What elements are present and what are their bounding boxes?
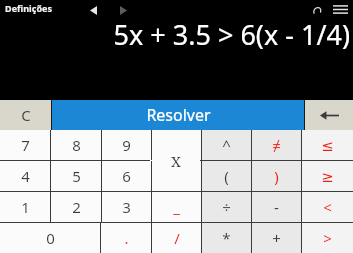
- staticText: _: [173, 197, 180, 217]
- staticText: ≥: [321, 168, 334, 185]
- button[interactable]: ≤: [302, 130, 353, 160]
- button[interactable]: 3: [102, 192, 151, 222]
- staticText: >: [323, 228, 332, 248]
- staticText: 5x + 3.5 > 6(x - 1/4): [95, 16, 350, 53]
- button[interactable]: .: [101, 223, 151, 253]
- staticText: Definições: [5, 2, 52, 14]
- staticText: /: [174, 228, 180, 248]
- staticText: (: [224, 166, 229, 186]
- button[interactable]: ≥: [302, 161, 353, 191]
- staticText: ): [274, 166, 279, 186]
- staticText: *: [222, 228, 231, 248]
- button[interactable]: >: [302, 223, 353, 253]
- staticText: 8: [72, 135, 81, 155]
- button[interactable]: Seguinte: [114, 2, 132, 18]
- button[interactable]: Anular: [308, 1, 326, 17]
- staticText: ^: [222, 135, 231, 155]
- staticText: 5: [72, 166, 81, 186]
- button[interactable]: 2: [51, 192, 101, 222]
- staticText: <: [323, 197, 332, 217]
- staticText: 0: [46, 228, 55, 248]
- button[interactable]: +: [252, 223, 301, 253]
- button[interactable]: 0: [0, 223, 100, 253]
- staticText: C: [21, 105, 31, 125]
- button[interactable]: 8: [51, 130, 101, 160]
- button[interactable]: /: [152, 223, 201, 253]
- button[interactable]: 1: [0, 192, 50, 222]
- button[interactable]: ^: [202, 130, 251, 160]
- staticText: 1: [21, 197, 30, 217]
- button[interactable]: 4: [0, 161, 50, 191]
- button[interactable]: _: [152, 192, 201, 222]
- button[interactable]: -: [252, 192, 301, 222]
- staticText: Resolver: [146, 104, 211, 126]
- button[interactable]: (: [202, 161, 251, 191]
- button[interactable]: 9: [102, 130, 151, 160]
- button[interactable]: ≠: [252, 130, 301, 160]
- button[interactable]: Anterior: [84, 2, 102, 18]
- button[interactable]: ): [252, 161, 301, 191]
- button[interactable]: X: [152, 130, 200, 191]
- button[interactable]: 6: [102, 161, 151, 191]
- button[interactable]: Resolver: [52, 100, 304, 130]
- button[interactable]: Menu: [329, 1, 351, 17]
- button[interactable]: Retrocesso: [305, 100, 353, 130]
- staticText: 6: [122, 166, 131, 186]
- button[interactable]: ÷: [202, 192, 251, 222]
- staticText: -: [274, 197, 279, 217]
- staticText: .: [124, 228, 129, 248]
- button[interactable]: C: [0, 100, 51, 130]
- button[interactable]: *: [202, 223, 251, 253]
- staticText: 3: [122, 197, 131, 217]
- staticText: +: [272, 228, 281, 248]
- staticText: X: [171, 151, 181, 171]
- staticText: ≠: [272, 135, 281, 155]
- staticText: 4: [21, 166, 30, 186]
- staticText: 2: [72, 197, 81, 217]
- staticText: ≤: [321, 137, 334, 154]
- staticText: 7: [21, 135, 30, 155]
- button[interactable]: <: [302, 192, 353, 222]
- button[interactable]: Definições: [3, 1, 54, 15]
- staticText: ÷: [222, 197, 231, 217]
- button[interactable]: 5: [51, 161, 101, 191]
- button[interactable]: 7: [0, 130, 50, 160]
- staticText: 9: [122, 135, 131, 155]
